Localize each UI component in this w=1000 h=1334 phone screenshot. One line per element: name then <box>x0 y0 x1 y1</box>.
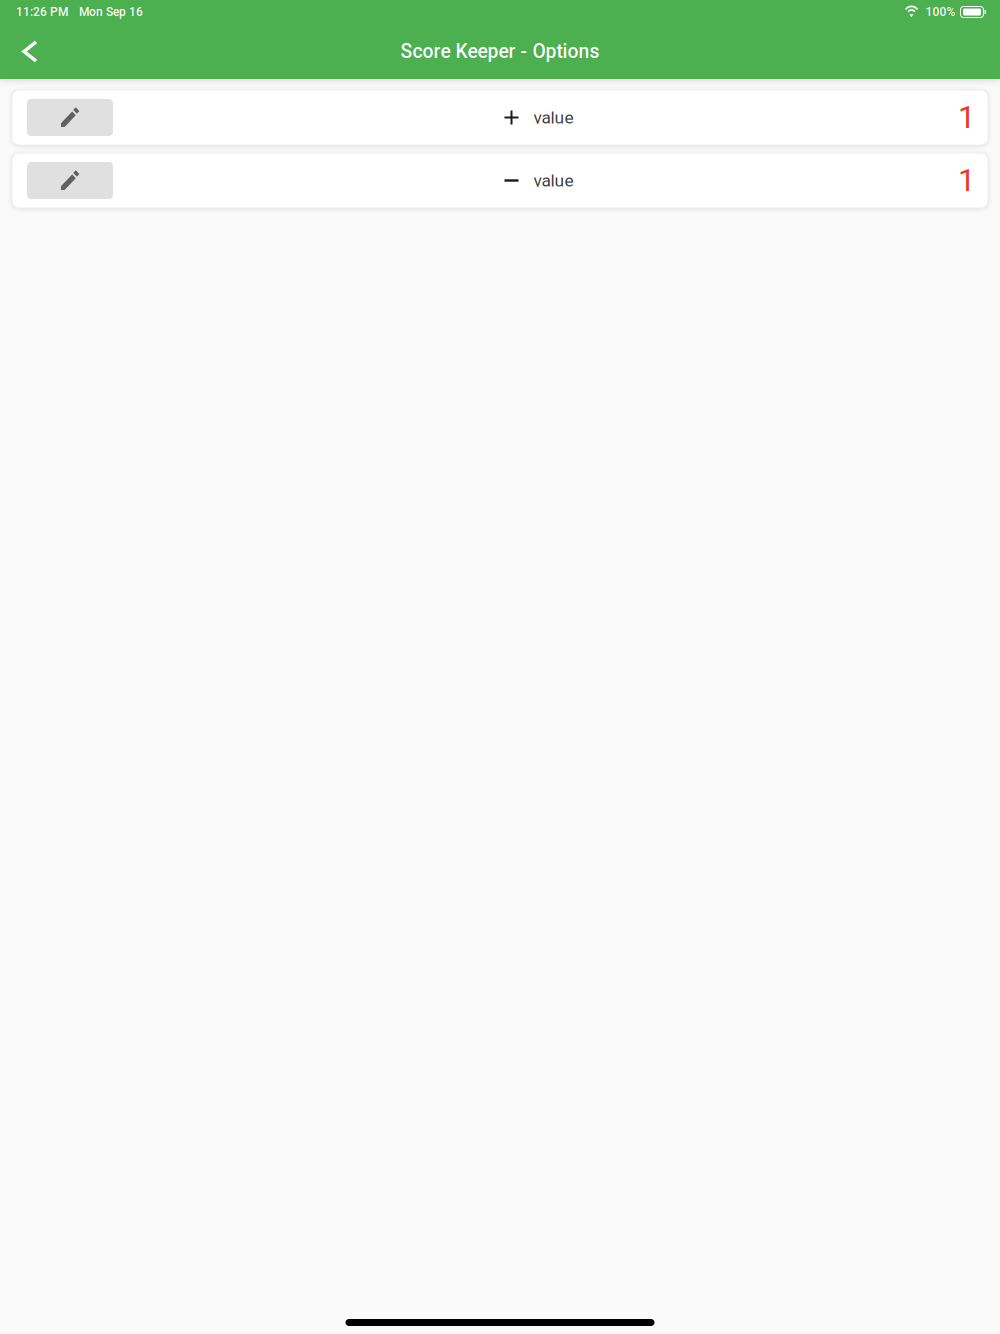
staticText: 11:26 PM <box>16 5 68 19</box>
staticText: 100% <box>925 5 955 19</box>
staticText: value <box>533 107 573 128</box>
staticText: Mon Sep 16 <box>79 5 143 19</box>
button[interactable]: Edit <box>27 162 113 199</box>
button[interactable]: Edit <box>27 99 113 136</box>
button[interactable]: Back <box>0 30 52 73</box>
staticText: 1 <box>958 162 975 198</box>
staticText: value <box>533 170 573 191</box>
staticText: 1 <box>958 99 975 135</box>
staticText: Score Keeper - Options <box>400 40 599 63</box>
